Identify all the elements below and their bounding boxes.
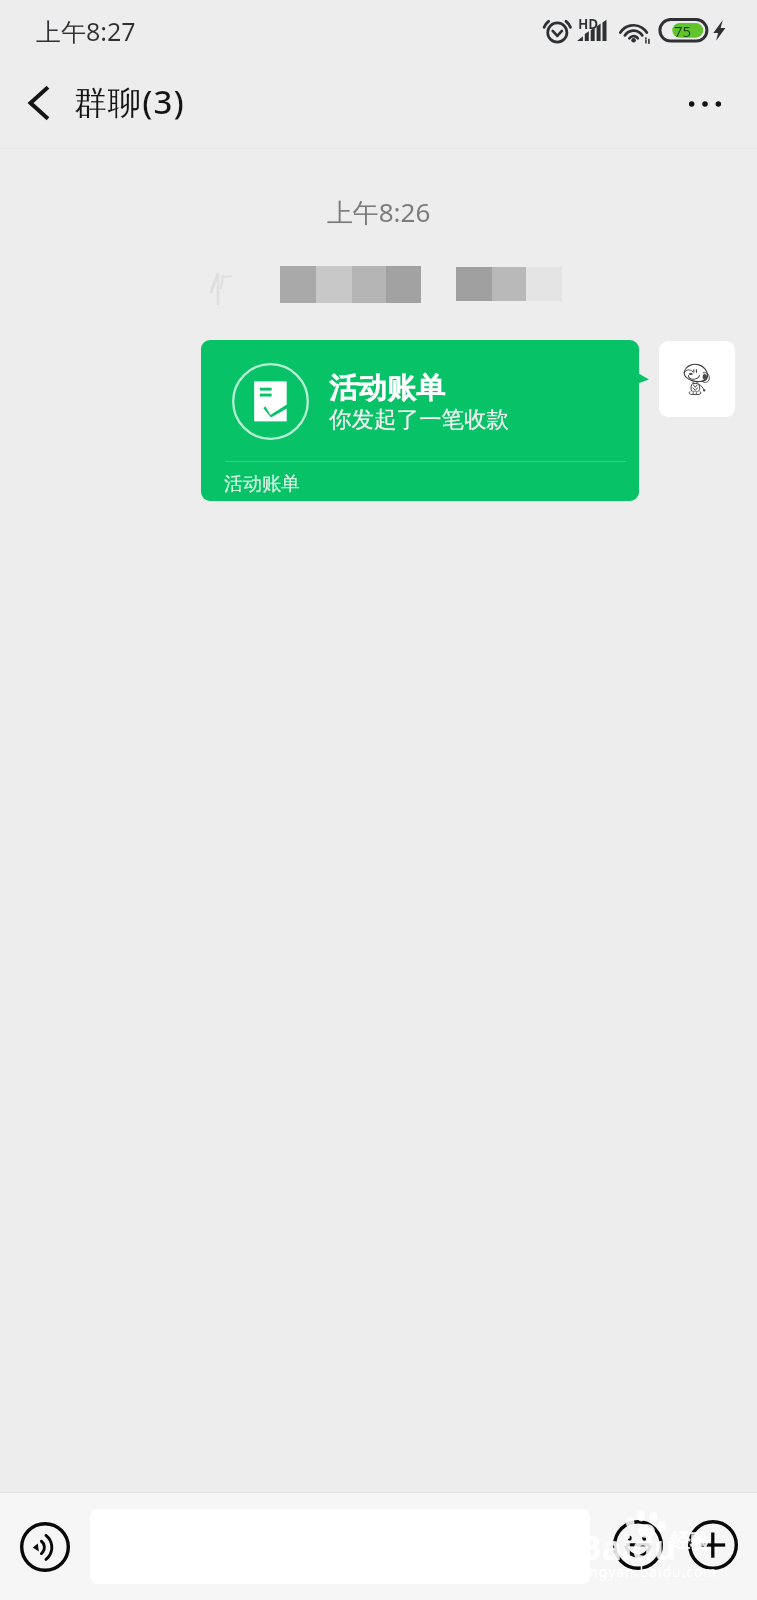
- staticText: 经验: [670, 1529, 710, 1554]
- button[interactable]: Contact avatar: [659, 341, 735, 417]
- button[interactable]: Voice input: [20, 1522, 70, 1572]
- button[interactable]: More options: [671, 62, 757, 148]
- staticText: 群聊(3): [74, 79, 185, 124]
- staticText: 上午8:26: [0, 194, 757, 230]
- staticText: HD: [578, 15, 599, 33]
- staticText: 你发起了一笔收款: [329, 405, 509, 433]
- staticText: 75: [674, 21, 692, 41]
- button[interactable]: Back: [0, 62, 74, 148]
- staticText: 活动账单: [329, 370, 445, 407]
- button[interactable]: Emoji: [613, 1520, 663, 1570]
- staticText: 上午8:27: [36, 14, 136, 48]
- button[interactable]: 活动账单: [201, 340, 639, 501]
- staticText: Baidu: [579, 1524, 676, 1570]
- staticText: 活动账单: [224, 472, 300, 496]
- staticText: jingyan.baidu.com: [580, 1563, 718, 1581]
- button[interactable]: More functions: [688, 1520, 738, 1570]
